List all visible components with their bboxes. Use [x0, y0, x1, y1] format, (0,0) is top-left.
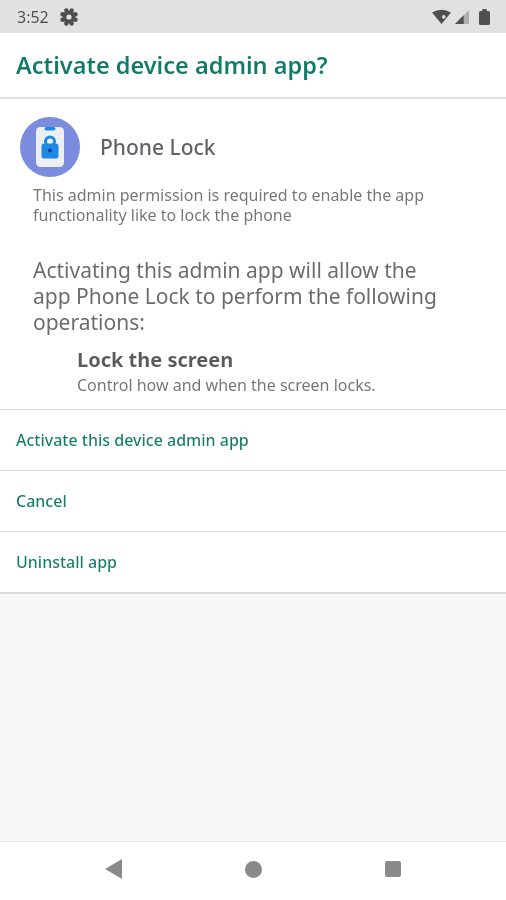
staticText: 3:52 — [17, 6, 49, 28]
staticText: Lock the screen — [77, 346, 234, 373]
button[interactable] — [101, 857, 125, 881]
button[interactable]: Uninstall app — [0, 532, 506, 592]
staticText: Phone Lock — [100, 133, 216, 162]
staticText: Activate this device admin app — [16, 429, 249, 451]
staticText: Activate device admin app? — [16, 49, 328, 81]
button[interactable]: Cancel — [0, 471, 506, 531]
staticText: Cancel — [16, 490, 67, 512]
staticText: Activating this admin app will allow the… — [33, 256, 437, 337]
button[interactable] — [241, 857, 265, 881]
staticText: Control how and when the screen locks. — [77, 374, 376, 396]
button[interactable] — [381, 857, 405, 881]
staticText: This admin permission is required to ena… — [33, 184, 425, 225]
button[interactable]: Activate this device admin app — [0, 410, 506, 470]
staticText: Uninstall app — [16, 551, 118, 573]
